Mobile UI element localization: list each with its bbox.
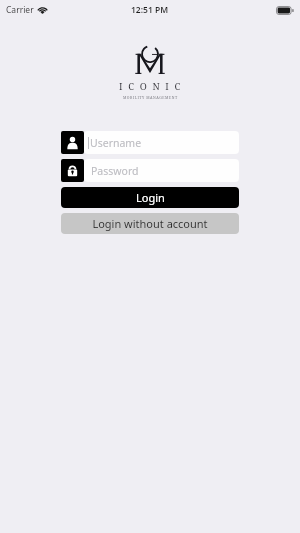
staticText: MOBILITY MANAGEMENT bbox=[123, 95, 178, 100]
staticText: Login without account bbox=[92, 216, 208, 231]
button[interactable]: Login without account bbox=[61, 213, 239, 234]
button[interactable]: Password bbox=[61, 159, 239, 182]
staticText: Login bbox=[136, 190, 165, 205]
staticText: Password bbox=[91, 164, 139, 178]
staticText: I C O N I C bbox=[119, 80, 182, 93]
staticText: Username bbox=[90, 136, 142, 150]
other: Username bbox=[61, 131, 84, 154]
staticText: 12:51 PM bbox=[131, 4, 169, 16]
button[interactable]: Login bbox=[61, 187, 239, 208]
button[interactable]: Username bbox=[61, 131, 239, 154]
other: Password bbox=[61, 159, 84, 182]
staticText: Carrier bbox=[6, 4, 34, 16]
